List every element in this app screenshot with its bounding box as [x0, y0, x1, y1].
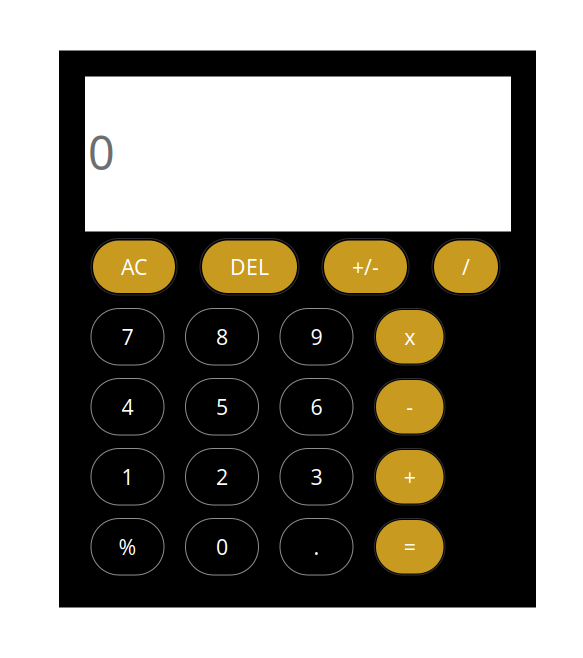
button[interactable]: 8	[185, 308, 258, 365]
staticText: DEL	[230, 253, 269, 281]
staticText: 1	[121, 463, 133, 491]
button[interactable]: DEL	[200, 238, 299, 295]
staticText: =	[404, 533, 416, 561]
staticText: 0	[216, 533, 228, 561]
button[interactable]: 9	[280, 308, 353, 365]
staticText: 3	[310, 463, 322, 491]
button[interactable]: AC	[91, 238, 177, 295]
button[interactable]: 4	[91, 378, 164, 435]
button[interactable]: %	[91, 518, 164, 575]
staticText: AC	[121, 253, 147, 281]
staticText: x	[404, 323, 415, 351]
staticText: 7	[121, 323, 133, 351]
staticText: +	[404, 463, 416, 491]
staticText: 6	[310, 393, 322, 421]
staticText: 8	[216, 323, 228, 351]
staticText: .	[313, 533, 319, 561]
staticText: +/-	[352, 253, 379, 281]
button[interactable]: 5	[185, 378, 258, 435]
staticText: 5	[216, 393, 228, 421]
staticText: %	[118, 533, 136, 561]
button[interactable]: 6	[280, 378, 353, 435]
staticText: 9	[310, 323, 322, 351]
button[interactable]: +	[374, 448, 445, 505]
button[interactable]: /	[432, 238, 500, 295]
staticText: 2	[216, 463, 228, 491]
button[interactable]: -	[374, 378, 445, 435]
button[interactable]: +/-	[322, 238, 409, 295]
staticText: /	[462, 253, 470, 281]
button[interactable]: 7	[91, 308, 164, 365]
button[interactable]: .	[280, 518, 353, 575]
button[interactable]: 3	[280, 448, 353, 505]
staticText: 0	[88, 121, 115, 183]
button[interactable]: x	[374, 308, 445, 365]
button[interactable]: 1	[91, 448, 164, 505]
staticText: 4	[121, 393, 133, 421]
button[interactable]: 2	[185, 448, 258, 505]
button[interactable]: =	[374, 518, 445, 575]
button[interactable]: 0	[185, 518, 258, 575]
staticText: -	[406, 393, 413, 421]
